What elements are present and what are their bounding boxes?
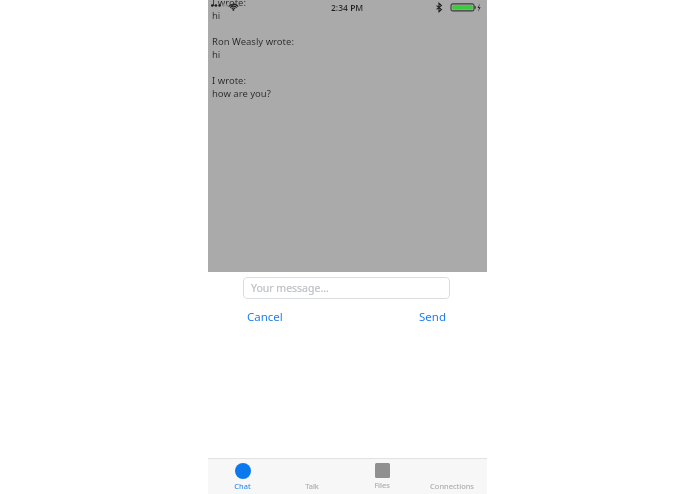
staticText: Files <box>374 480 390 490</box>
staticText: Your message… <box>251 281 329 295</box>
staticText: I wrote: <box>212 74 246 87</box>
button[interactable]: Cancel <box>243 307 287 327</box>
staticText: hi <box>212 48 221 61</box>
button[interactable]: Send <box>415 307 450 327</box>
button[interactable]: Files <box>347 459 417 490</box>
staticText: Connections <box>430 481 474 491</box>
staticText: I wrote: <box>212 0 246 9</box>
staticText: Ron Weasly wrote: <box>212 35 294 48</box>
staticText: Talk <box>305 481 319 491</box>
staticText: Chat <box>234 481 251 491</box>
staticText: Send <box>419 309 446 325</box>
button[interactable]: Your message… <box>243 277 450 299</box>
staticText: 2:34 PM <box>331 2 364 14</box>
staticText: how are you? <box>212 87 271 100</box>
staticText: hi <box>212 9 221 22</box>
button[interactable]: Chat <box>208 459 277 491</box>
button[interactable]: Talk <box>277 459 347 491</box>
staticText: Cancel <box>247 309 283 325</box>
button[interactable]: Connections <box>417 459 487 491</box>
